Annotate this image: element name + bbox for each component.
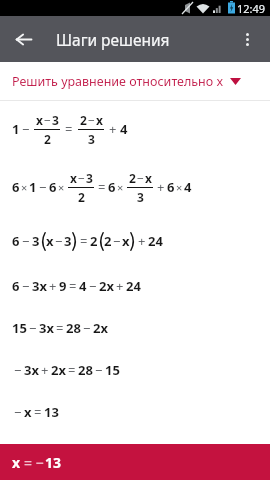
staticText: ×	[58, 180, 65, 195]
staticText: 24	[126, 277, 141, 295]
staticText: −	[113, 232, 121, 250]
staticText: Шаги решения	[56, 29, 170, 50]
staticText: 15	[105, 361, 120, 379]
staticText: 6	[108, 178, 116, 196]
staticText: 1	[29, 178, 37, 196]
staticText: x	[122, 232, 130, 250]
staticText: −	[137, 170, 144, 186]
staticText: −	[36, 453, 45, 472]
staticText: x	[96, 112, 103, 128]
staticText: 2	[104, 232, 112, 250]
staticText: −	[55, 232, 63, 250]
staticText: 2	[78, 189, 85, 205]
staticText: 2	[90, 232, 98, 250]
button[interactable]: Back	[0, 16, 46, 62]
staticText: +	[116, 277, 124, 295]
staticText: 2	[129, 170, 136, 186]
staticText: 28	[66, 319, 81, 337]
staticText: x	[145, 170, 152, 186]
staticText: x	[12, 453, 21, 472]
staticText: −	[29, 319, 37, 337]
staticText: 3	[137, 189, 144, 205]
staticText: =	[56, 319, 64, 337]
staticText: 3	[88, 131, 95, 147]
staticText: x	[24, 403, 32, 421]
staticText: 6	[12, 232, 20, 250]
staticText: =	[69, 277, 77, 295]
staticText: 4	[120, 120, 128, 138]
staticText: 13	[45, 453, 62, 472]
staticText: 2	[44, 131, 51, 147]
staticText: −	[44, 112, 51, 128]
staticText: +	[41, 361, 49, 379]
staticText: 6	[12, 178, 20, 196]
button[interactable]: Решить уравнение относительно x	[12, 73, 270, 90]
staticText: 28	[78, 361, 93, 379]
staticText: ×	[176, 180, 183, 195]
staticText: +	[49, 277, 57, 295]
staticText: −	[22, 120, 30, 138]
staticText: 2	[80, 112, 87, 128]
staticText: 6	[12, 277, 20, 295]
staticText: 3	[64, 232, 72, 250]
staticText: =	[80, 232, 88, 250]
staticText: 3	[52, 112, 59, 128]
staticText: =	[24, 453, 33, 472]
staticText: Решить уравнение относительно x	[12, 73, 224, 90]
staticText: 2x	[99, 277, 114, 295]
staticText: 3	[86, 170, 93, 186]
staticText: 13	[44, 403, 59, 421]
staticText: −	[88, 112, 95, 128]
staticText: −	[22, 232, 30, 250]
staticText: −	[83, 319, 91, 337]
staticText: 6	[167, 178, 175, 196]
staticText: =	[34, 403, 42, 421]
staticText: x	[70, 170, 77, 186]
staticText: =	[65, 120, 73, 138]
button[interactable]: More options	[224, 16, 270, 62]
staticText: +	[157, 178, 165, 196]
staticText: 15	[12, 319, 27, 337]
staticText: 3x	[39, 319, 54, 337]
staticText: x	[36, 112, 43, 128]
staticText: −	[39, 178, 47, 196]
staticText: 2x	[51, 361, 66, 379]
staticText: −	[14, 403, 22, 421]
staticText: x	[46, 232, 54, 250]
staticText: −	[95, 361, 103, 379]
staticText: −	[14, 361, 22, 379]
staticText: −	[89, 277, 97, 295]
staticText: 9	[59, 277, 67, 295]
staticText: +	[109, 120, 117, 138]
staticText: =	[68, 361, 76, 379]
staticText: −	[78, 170, 85, 186]
staticText: 3	[32, 232, 40, 250]
staticText: −	[22, 277, 30, 295]
staticText: 12:49	[237, 1, 266, 16]
staticText: 4	[79, 277, 87, 295]
staticText: 6	[49, 178, 57, 196]
staticText: 3x	[24, 361, 39, 379]
staticText: 3x	[32, 277, 47, 295]
staticText: ×	[21, 180, 28, 195]
button[interactable]: x	[0, 444, 270, 480]
staticText: 2x	[93, 319, 108, 337]
staticText: 1	[12, 120, 20, 138]
staticText: =	[98, 178, 106, 196]
staticText: ×	[117, 180, 124, 195]
staticText: +	[138, 232, 146, 250]
staticText: 4	[184, 178, 192, 196]
staticText: 24	[148, 232, 163, 250]
